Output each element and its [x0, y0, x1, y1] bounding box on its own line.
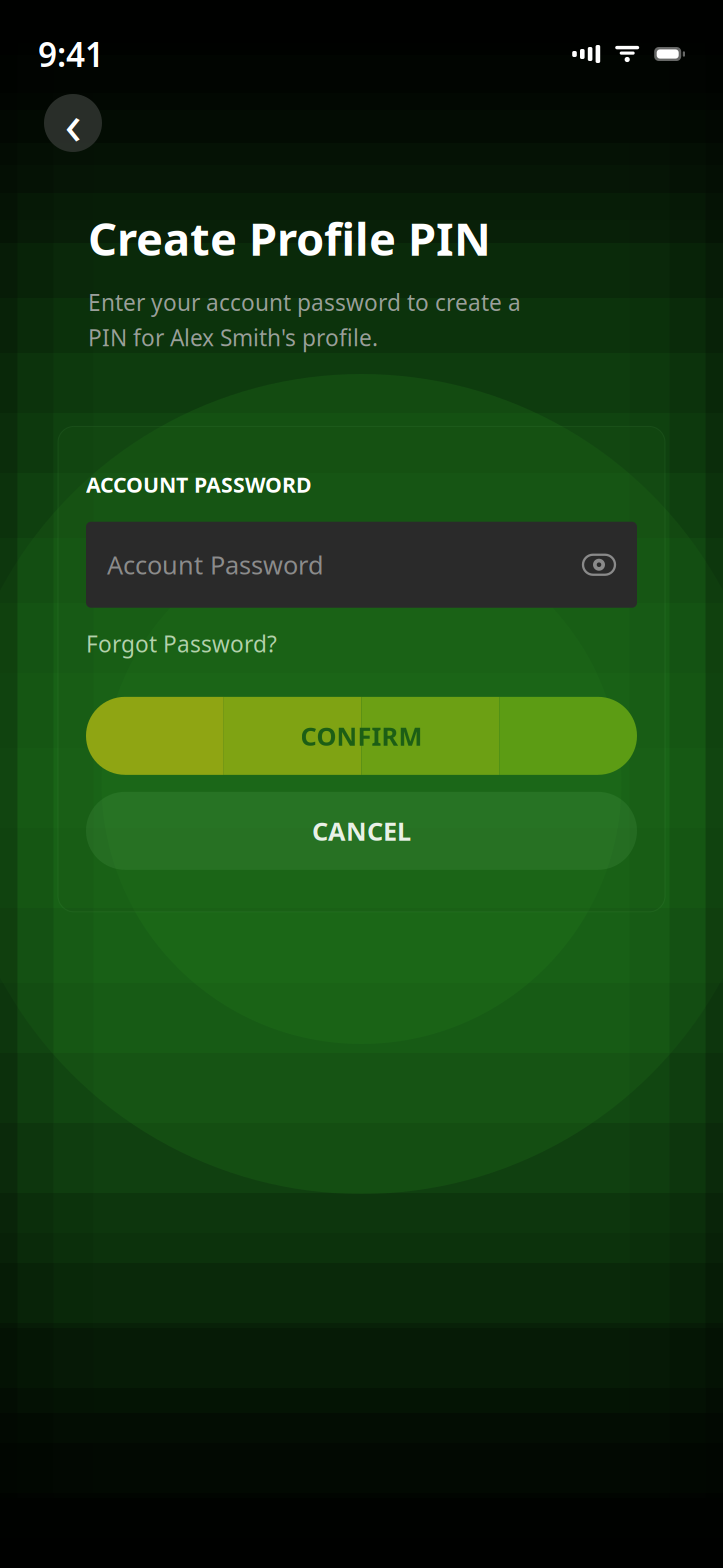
- button[interactable]: CANCEL: [86, 792, 637, 870]
- button[interactable]: Back: [44, 94, 102, 152]
- button[interactable]: CONFIRM: [86, 697, 637, 775]
- staticText: Account Password: [107, 548, 324, 581]
- staticText: ACCOUNT PASSWORD: [86, 470, 312, 499]
- staticText: Forgot Password?: [86, 629, 277, 659]
- button[interactable]: Forgot Password?: [86, 624, 277, 664]
- staticText: Enter your account password to create a: [88, 287, 521, 317]
- staticText: Create Profile PIN: [88, 208, 491, 268]
- button[interactable]: Account Password: [86, 522, 637, 608]
- staticText: CONFIRM: [300, 719, 422, 753]
- staticText: ‹: [64, 86, 81, 160]
- staticText: PIN for Alex Smith's profile.: [88, 322, 378, 352]
- staticText: 9:41: [38, 32, 104, 76]
- staticText: CANCEL: [312, 814, 411, 848]
